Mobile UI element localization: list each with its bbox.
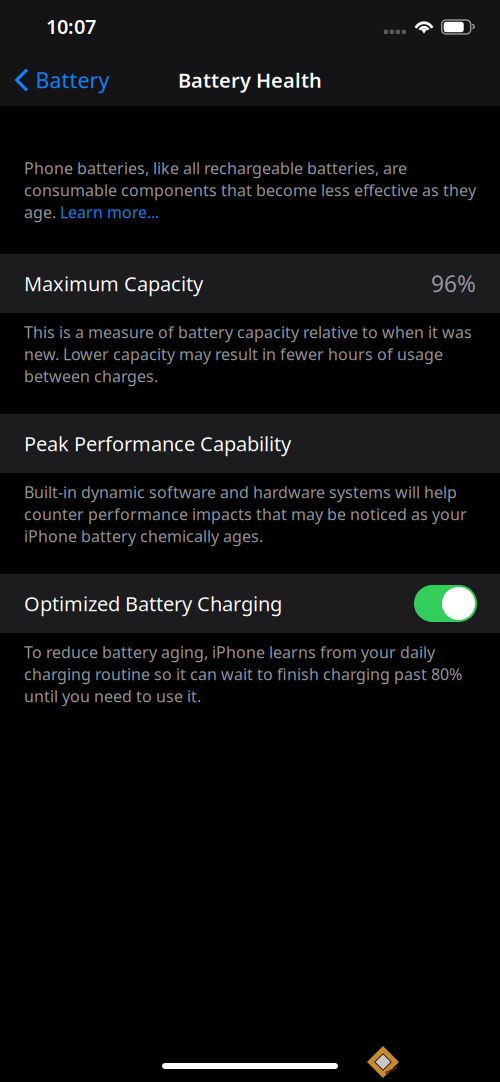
staticText: Maximum Capacity bbox=[24, 270, 203, 297]
staticText: Learn more... bbox=[60, 201, 159, 223]
staticText: Peak Performance Capability bbox=[24, 430, 291, 457]
button[interactable]: Maximum Capacity bbox=[0, 254, 500, 313]
staticText: until you need to use it. bbox=[24, 685, 201, 707]
staticText: consumable components that become less e… bbox=[24, 179, 476, 201]
staticText: To reduce battery aging, iPhone learns f… bbox=[24, 641, 435, 663]
staticText: new. Lower capacity may result in fewer … bbox=[24, 343, 443, 365]
staticText: charging routine so it can wait to finis… bbox=[24, 663, 462, 685]
staticText: Battery bbox=[36, 66, 110, 94]
staticText: Built-in dynamic software and hardware s… bbox=[24, 481, 457, 503]
staticText: This is a measure of battery capacity re… bbox=[24, 321, 472, 343]
button[interactable]: Battery bbox=[0, 54, 122, 106]
staticText: Battery Health bbox=[178, 67, 322, 93]
button[interactable]: Peak Performance Capability bbox=[0, 414, 500, 473]
staticText: between charges. bbox=[24, 365, 158, 387]
button[interactable]: Learn more... bbox=[60, 201, 159, 223]
staticText: age. bbox=[24, 201, 60, 223]
staticText: 10:07 bbox=[46, 13, 96, 40]
staticText: Phone batteries, like all rechargeable b… bbox=[24, 157, 407, 179]
staticText: counter performance impacts that may be … bbox=[24, 503, 467, 525]
staticText: Optimized Battery Charging bbox=[24, 590, 282, 617]
staticText: 96% bbox=[431, 268, 476, 298]
staticText: iPhone battery chemically ages. bbox=[24, 525, 263, 547]
button[interactable]: Optimized Battery Charging bbox=[0, 574, 500, 633]
